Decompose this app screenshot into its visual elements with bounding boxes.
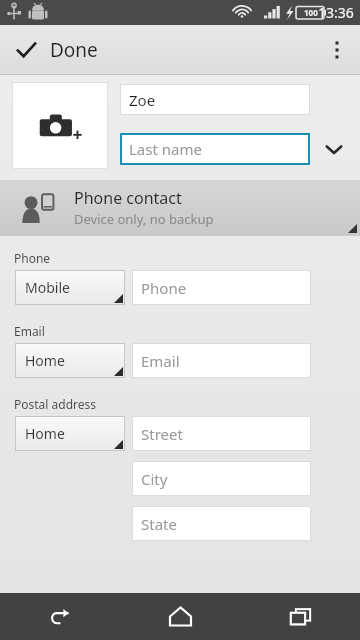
- staticText: Phone contact: [74, 187, 182, 209]
- button[interactable]: Mobile: [15, 270, 125, 305]
- button[interactable]: Phone contact: [0, 180, 360, 236]
- button[interactable]: More options: [314, 27, 360, 73]
- staticText: Device only, no backup: [74, 210, 214, 228]
- button[interactable]: Expand name fields: [316, 131, 352, 167]
- staticText: City: [141, 469, 168, 489]
- staticText: Phone: [14, 250, 51, 266]
- staticText: Postal address: [14, 396, 97, 412]
- button[interactable]: Last name: [120, 133, 310, 165]
- staticText: Street: [141, 424, 183, 444]
- button[interactable]: City: [132, 461, 311, 496]
- button[interactable]: Done: [0, 31, 114, 69]
- staticText: Zoe: [129, 90, 156, 110]
- staticText: Last name: [129, 139, 202, 159]
- staticText: 13:36: [318, 3, 354, 22]
- staticText: Done: [50, 37, 98, 63]
- button[interactable]: Street: [132, 416, 311, 451]
- button[interactable]: Add photo: [12, 82, 108, 169]
- staticText: Home: [25, 351, 65, 370]
- button[interactable]: Phone: [132, 270, 311, 305]
- staticText: State: [141, 514, 177, 534]
- button[interactable]: Recent apps: [240, 593, 360, 640]
- button[interactable]: Email: [132, 343, 311, 378]
- staticText: Email: [14, 323, 45, 339]
- staticText: Email: [141, 351, 180, 371]
- button[interactable]: Zoe: [120, 84, 310, 115]
- button[interactable]: State: [132, 506, 311, 541]
- button[interactable]: Back: [0, 593, 120, 640]
- button[interactable]: Home: [120, 593, 240, 640]
- staticText: Mobile: [25, 278, 70, 297]
- staticText: Home: [25, 424, 65, 443]
- button[interactable]: Home: [15, 343, 125, 378]
- staticText: 100: [304, 7, 318, 18]
- button[interactable]: Home: [15, 416, 125, 451]
- staticText: Phone: [141, 278, 187, 298]
